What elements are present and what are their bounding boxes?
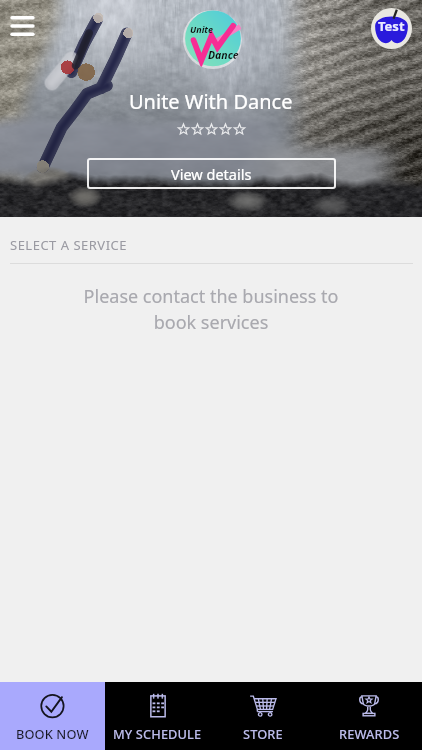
staticText: STORE bbox=[243, 725, 283, 742]
button[interactable]: MY SCHEDULE bbox=[105, 682, 210, 750]
staticText: Test bbox=[378, 17, 405, 35]
staticText: SELECT A SERVICE bbox=[10, 236, 128, 254]
staticText: REWARDS bbox=[339, 725, 400, 742]
staticText: Please contact the business to book serv… bbox=[0, 284, 422, 334]
button[interactable]: BOOK NOW bbox=[0, 682, 105, 750]
button[interactable]: REWARDS bbox=[316, 682, 422, 750]
button[interactable]: Profile bbox=[371, 8, 412, 49]
staticText: View details bbox=[171, 164, 252, 184]
button[interactable]: Menu bbox=[5, 9, 39, 43]
button[interactable]: View details bbox=[87, 158, 336, 189]
staticText: Unite bbox=[190, 23, 214, 35]
button[interactable]: STORE bbox=[210, 682, 316, 750]
staticText: BOOK NOW bbox=[16, 725, 89, 742]
staticText: Unite With Dance bbox=[129, 88, 293, 115]
staticText: Dance bbox=[208, 48, 239, 62]
staticText: MY SCHEDULE bbox=[113, 725, 202, 742]
